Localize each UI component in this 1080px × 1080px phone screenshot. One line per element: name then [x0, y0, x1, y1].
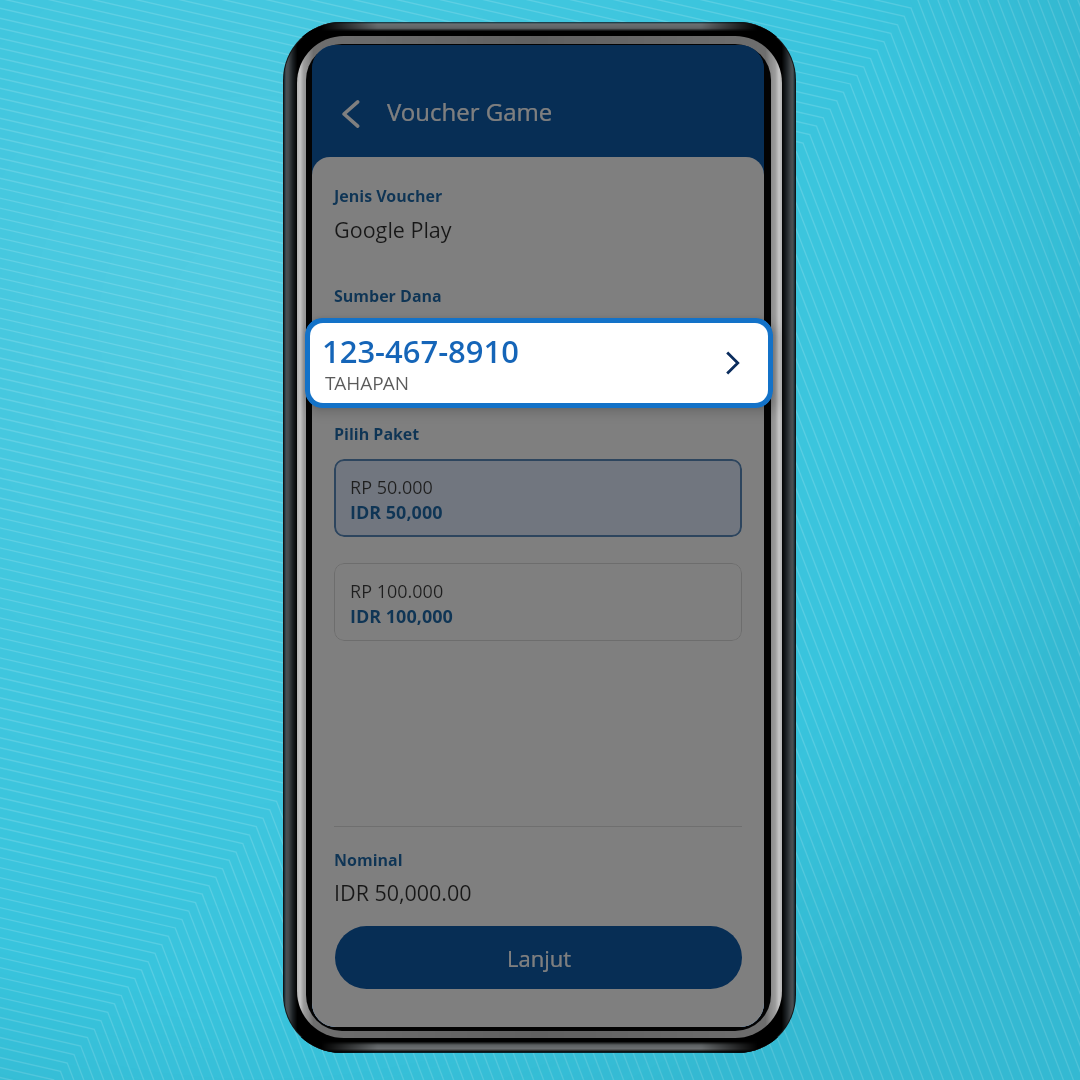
staticText: RP 100.000 — [350, 579, 444, 604]
staticText: Pilih Paket — [334, 423, 420, 445]
staticText: Voucher Game — [387, 95, 553, 128]
staticText: IDR 100,000 — [350, 604, 453, 629]
staticText: Jenis Voucher — [334, 185, 443, 207]
staticText: TAHAPAN — [325, 370, 410, 396]
staticText: TAHAPAN — [334, 371, 419, 397]
staticText: RP 50.000 — [350, 475, 433, 500]
staticText: Nominal — [334, 849, 403, 871]
button[interactable]: 123-467-8910 — [305, 318, 773, 408]
staticText: Sumber Dana — [334, 285, 442, 307]
staticText: 123-467-8910 — [334, 333, 531, 375]
button[interactable]: Lanjut — [335, 926, 742, 989]
staticText: Lanjut — [507, 943, 571, 973]
staticText: 123-467-8910 — [322, 330, 519, 372]
staticText: IDR 50,000.00 — [334, 878, 472, 907]
button[interactable]: Back — [328, 91, 374, 137]
button[interactable]: RP 100.000 — [334, 563, 742, 641]
button[interactable]: RP 50.000 — [334, 459, 742, 537]
button[interactable]: Choose account — [714, 345, 750, 381]
staticText: Google Play — [334, 215, 452, 244]
staticText: IDR 50,000 — [350, 500, 443, 525]
